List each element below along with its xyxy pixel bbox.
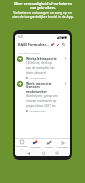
button[interactable]: Nieuws xyxy=(42,140,56,149)
staticText: aan de werkplek het xyxy=(26,66,55,70)
staticText: 9:41 xyxy=(18,35,24,39)
staticText: KAM Formulier... xyxy=(18,42,49,47)
staticText: 18 maart 2021 xyxy=(29,76,46,79)
button[interactable]: Formulieren xyxy=(15,139,28,150)
staticText: Werk-instructie Genoem xyxy=(26,81,63,89)
staticText: Meer eenvoudigheid of verbeteren xyxy=(14,1,72,6)
staticText: nieuwe medewerk op xyxy=(26,99,57,103)
button[interactable]: Edit xyxy=(55,42,61,48)
staticText: Verbeteren ontvangen en zorg op en xyxy=(13,10,72,15)
staticText: van gebruikers. xyxy=(30,5,56,10)
staticText: Werkplekinspectie xyxy=(26,56,57,60)
staticText: Instructies xyxy=(57,146,69,149)
button[interactable]: Werkplekinspectie xyxy=(15,55,70,80)
staticText: Formulieren xyxy=(15,145,28,150)
button[interactable]: Search xyxy=(61,42,66,48)
staticText: 18 feb tot, derk op xyxy=(26,61,52,65)
button[interactable]: Instructies xyxy=(56,140,70,149)
staticText: zien de toegankelijker beeld in de App. xyxy=(12,14,74,19)
staticText: 18 maart 2021 xyxy=(29,109,46,112)
staticText: Nieuws xyxy=(45,146,53,149)
staticText: medewerker xyxy=(26,89,47,93)
button[interactable]: More options xyxy=(63,81,68,86)
staticText: Beschrijven, groep om xyxy=(26,94,58,98)
button[interactable]: Werk-instructie Genoem xyxy=(15,80,70,113)
staticText: project deze 2021 ins xyxy=(26,104,56,108)
button[interactable]: Notifications xyxy=(49,42,55,48)
staticText: laten uitvoerd xyxy=(26,71,46,75)
button[interactable]: More options xyxy=(63,56,68,61)
button[interactable]: Meldingen xyxy=(28,140,42,149)
staticText: Meldingen xyxy=(29,146,41,149)
staticText: LAATSTE ITEMS xyxy=(18,51,41,54)
